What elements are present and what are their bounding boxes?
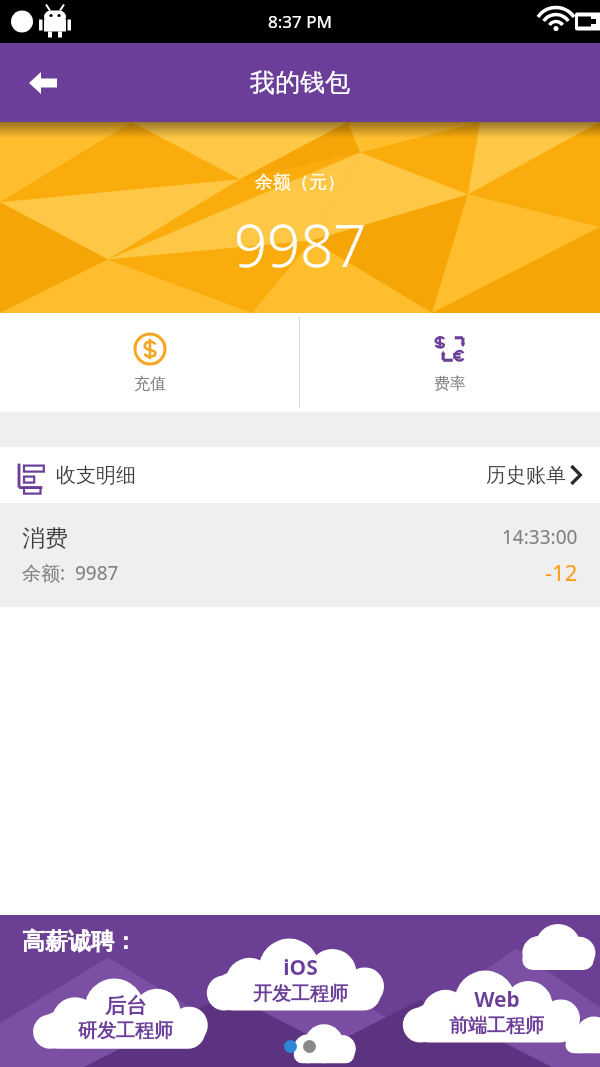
button[interactable]: 费率: [300, 313, 600, 412]
staticText: 开发工程师: [253, 982, 348, 1006]
staticText: 研发工程师: [78, 1019, 173, 1043]
button[interactable]: 充值: [0, 313, 299, 412]
staticText: 余额（元）: [255, 171, 345, 194]
staticText: 前端工程师: [449, 1014, 544, 1038]
staticText: 9987: [234, 205, 367, 284]
staticText: 14:33:00: [502, 524, 578, 550]
staticText: 费率: [434, 374, 466, 394]
button[interactable]: 消费: [0, 503, 600, 607]
staticText: 充值: [134, 374, 166, 394]
staticText: 余额: 9987: [22, 560, 119, 586]
staticText: 8:37 PM: [268, 10, 332, 33]
staticText: 后台: [105, 993, 147, 1019]
staticText: -12: [545, 557, 578, 587]
button[interactable]: Back: [10, 50, 76, 116]
staticText: 我的钱包: [250, 67, 350, 98]
button[interactable]: 收支明细: [0, 447, 600, 503]
staticText: 收支明细: [56, 463, 136, 488]
staticText: Web: [474, 985, 520, 1014]
button[interactable]: 高薪诚聘：: [0, 915, 600, 1067]
staticText: 高薪诚聘：: [22, 927, 137, 956]
staticText: 历史账单: [486, 463, 566, 488]
staticText: 消费: [22, 524, 68, 553]
staticText: iOS: [283, 953, 318, 982]
